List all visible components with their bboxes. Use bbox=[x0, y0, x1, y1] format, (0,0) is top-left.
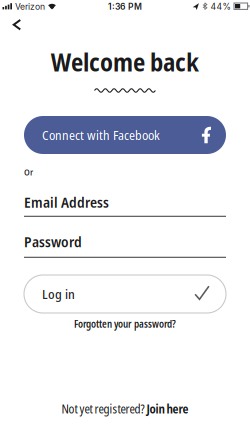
button[interactable]: Connect with Facebook bbox=[24, 116, 226, 154]
staticText: Not yet registered? Join here bbox=[61, 401, 188, 417]
staticText: Welcome back bbox=[51, 45, 199, 79]
staticText: Password bbox=[24, 232, 82, 251]
staticText: Forgotten your password? bbox=[74, 317, 176, 331]
staticText: Or bbox=[24, 166, 33, 178]
staticText: Verizon bbox=[15, 1, 45, 12]
button[interactable]: Back bbox=[4, 10, 30, 39]
staticText: 1:36 PM bbox=[108, 1, 142, 12]
staticText: Connect with Facebook bbox=[42, 126, 160, 144]
staticText: Log in bbox=[42, 285, 75, 303]
button[interactable]: Log in bbox=[24, 275, 226, 313]
staticText: Email Address bbox=[24, 192, 109, 212]
button[interactable]: Not yet registered? Join here bbox=[57, 397, 192, 421]
button[interactable]: Forgotten your password? bbox=[71, 314, 179, 334]
staticText: 44% bbox=[210, 1, 230, 12]
